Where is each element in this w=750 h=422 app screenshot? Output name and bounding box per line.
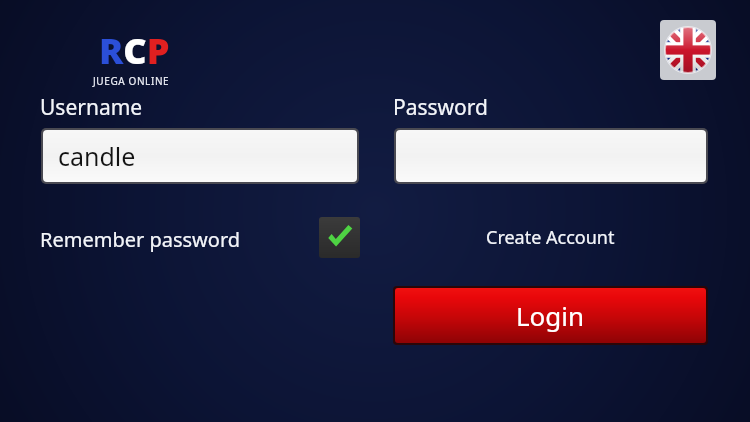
button[interactable]: RCP [93, 30, 177, 92]
staticText: RCP [99, 26, 170, 75]
button[interactable] [396, 130, 706, 182]
button[interactable]: Remember password checkbox, checked [319, 217, 360, 258]
button[interactable]: candle [43, 130, 357, 182]
button[interactable]: Login [395, 288, 706, 343]
staticText: Username [40, 93, 143, 122]
staticText: Create Account [486, 225, 615, 250]
staticText: Password [393, 93, 488, 122]
button[interactable]: Remember password [40, 226, 241, 253]
button[interactable]: Create Account [470, 222, 630, 252]
staticText: Login [516, 298, 585, 333]
button[interactable]: Change language [660, 20, 716, 80]
staticText: candle [58, 139, 136, 173]
staticText: JUEGA ONLINE [93, 74, 170, 88]
